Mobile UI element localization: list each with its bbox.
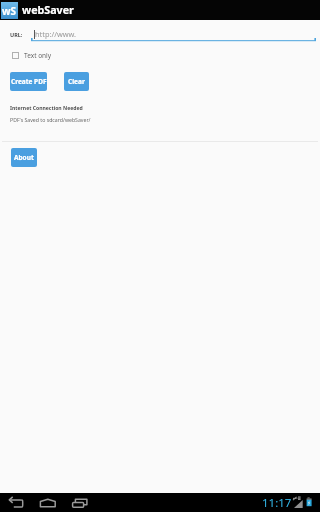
staticText: webSaver	[22, 3, 74, 18]
staticText: URL:	[10, 31, 23, 38]
button[interactable]: Home	[34, 493, 62, 512]
staticText: wS	[2, 4, 17, 18]
button[interactable]: Back	[2, 493, 30, 512]
staticText: Internet Connection Needed	[10, 105, 83, 112]
staticText: 11:17	[262, 495, 292, 511]
staticText: PDF's Saved to sdcard/webSaver/	[10, 116, 91, 123]
staticText: Text only	[24, 51, 52, 60]
button[interactable]: Clear	[64, 72, 89, 91]
button[interactable]: Recent apps	[66, 493, 94, 512]
button[interactable]: Text only	[9, 48, 55, 63]
staticText: Clear	[68, 77, 85, 86]
staticText: About	[14, 153, 34, 162]
button[interactable]: Create PDF	[10, 72, 47, 91]
staticText: Create PDF	[11, 77, 47, 86]
staticText: http://www.	[35, 29, 77, 39]
button[interactable]: About	[11, 148, 37, 167]
